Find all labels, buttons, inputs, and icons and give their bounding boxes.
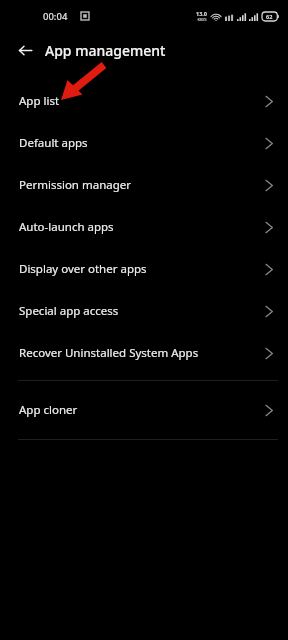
staticText: Display over other apps bbox=[19, 261, 147, 277]
staticText: 00:04 bbox=[43, 10, 68, 23]
staticText: App list bbox=[19, 93, 60, 109]
button[interactable]: Permission manager bbox=[0, 164, 288, 206]
button[interactable]: Auto-launch apps bbox=[0, 206, 288, 248]
button[interactable]: App list bbox=[0, 80, 288, 122]
staticText: KB/S bbox=[197, 17, 207, 23]
button[interactable]: Default apps bbox=[0, 122, 288, 164]
staticText: Permission manager bbox=[19, 177, 132, 193]
staticText: 62 bbox=[266, 13, 273, 20]
button[interactable]: Recover Uninstalled System Apps bbox=[0, 332, 288, 374]
button[interactable]: App cloner bbox=[0, 389, 288, 431]
button[interactable]: Special app access bbox=[0, 290, 288, 332]
staticText: Special app access bbox=[19, 303, 119, 319]
staticText: Recover Uninstalled System Apps bbox=[19, 345, 199, 361]
staticText: 13.0 bbox=[196, 10, 207, 17]
staticText: App cloner bbox=[19, 402, 78, 418]
staticText: Auto-launch apps bbox=[19, 219, 114, 235]
staticText: Default apps bbox=[19, 135, 88, 151]
button[interactable]: Back bbox=[13, 38, 38, 63]
staticText: App management bbox=[45, 41, 166, 60]
button[interactable]: Display over other apps bbox=[0, 248, 288, 290]
